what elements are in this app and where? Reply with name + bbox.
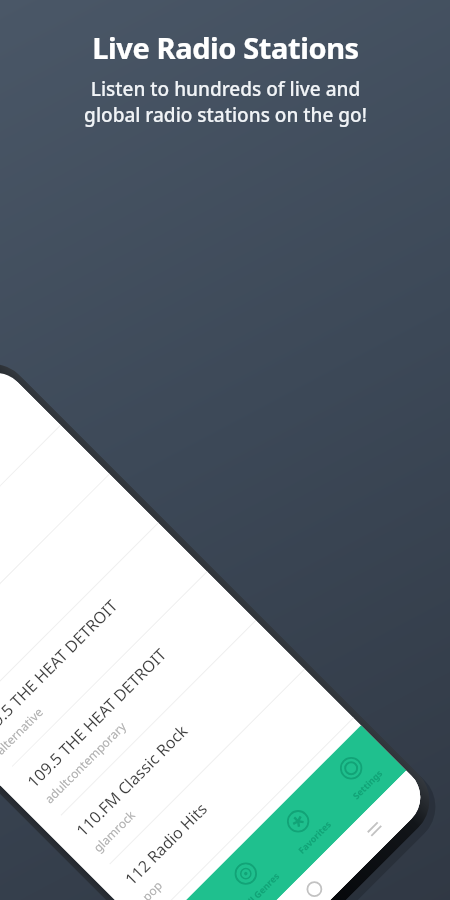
staticText: glamrock bbox=[89, 806, 138, 855]
staticText: Listen to hundreds of live and global ra… bbox=[84, 76, 367, 128]
button[interactable]: Favorites bbox=[255, 778, 353, 876]
button[interactable]: Settings bbox=[308, 725, 406, 823]
button[interactable]: 109.5 THE HEAT DETROIT bbox=[0, 523, 207, 782]
button[interactable]: All Radios bbox=[150, 883, 248, 900]
staticText: Settings bbox=[350, 767, 384, 801]
staticText: Live Radio Stations bbox=[92, 28, 359, 67]
button[interactable]: 120 Minutes Indie bbox=[143, 718, 361, 900]
staticText: 109.5 THE HEAT DETROIT bbox=[22, 643, 172, 792]
staticText: 110.FM Classic Rock bbox=[71, 719, 193, 841]
staticText: 109.5 THE HEAT DETROIT bbox=[0, 594, 123, 743]
staticText: alternative bbox=[0, 703, 46, 758]
button[interactable]: 109.5 THE HEAT DETROIT bbox=[0, 572, 256, 830]
button[interactable]: Recents bbox=[346, 801, 403, 857]
button[interactable]: Home bbox=[286, 861, 343, 900]
button[interactable]: 108Pra bbox=[0, 474, 158, 733]
staticText: All Genres bbox=[241, 869, 282, 900]
button[interactable]: All Genres bbox=[203, 831, 300, 900]
staticText: 112 Radio Hits bbox=[120, 798, 212, 890]
button[interactable]: 106.9 The Eagle bbox=[0, 376, 60, 635]
staticText: pop bbox=[138, 876, 166, 900]
button[interactable]: 112 Radio Hits bbox=[94, 669, 353, 900]
staticText: Favorites bbox=[295, 818, 333, 856]
staticText: adultcontemporary bbox=[41, 718, 129, 806]
button[interactable]: 107.7 The Bone bbox=[0, 425, 109, 684]
button[interactable]: 110.FM Classic Rock bbox=[46, 620, 304, 879]
